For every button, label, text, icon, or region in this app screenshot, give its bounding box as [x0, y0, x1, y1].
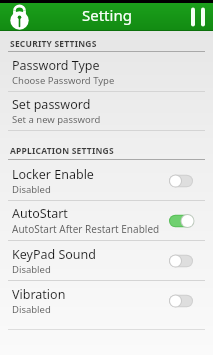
- staticText: AutoStart: [12, 205, 68, 222]
- staticText: Locker Enable: [12, 166, 94, 183]
- staticText: Vibration: [12, 286, 66, 303]
- staticText: SECURITY SETTINGS: [10, 38, 97, 50]
- staticText: Disabled: [12, 263, 51, 276]
- staticText: Disabled: [12, 183, 51, 196]
- button[interactable]: Setting: [82, 5, 132, 25]
- staticText: Disabled: [12, 303, 51, 316]
- staticText: KeyPad Sound: [12, 246, 96, 263]
- button[interactable]: [190, 6, 206, 28]
- staticText: Choose Password Type: [12, 74, 115, 87]
- button[interactable]: AutoStart: [0, 201, 213, 240]
- button[interactable]: Locker Enable: [0, 161, 213, 200]
- button[interactable]: KeyPad Sound: [0, 241, 213, 280]
- button[interactable]: Set password: [0, 92, 213, 130]
- button[interactable]: Password Type: [0, 53, 213, 91]
- button[interactable]: Vibration: [0, 281, 213, 321]
- staticText: Set password: [12, 96, 91, 113]
- staticText: Setting: [82, 5, 132, 25]
- button[interactable]: [7, 5, 32, 30]
- staticText: APPLICATION SETTINGS: [10, 145, 114, 157]
- staticText: AutoStart After Restart Enabled: [12, 222, 160, 236]
- staticText: Set a new password: [12, 113, 101, 126]
- staticText: Password Type: [12, 57, 100, 74]
